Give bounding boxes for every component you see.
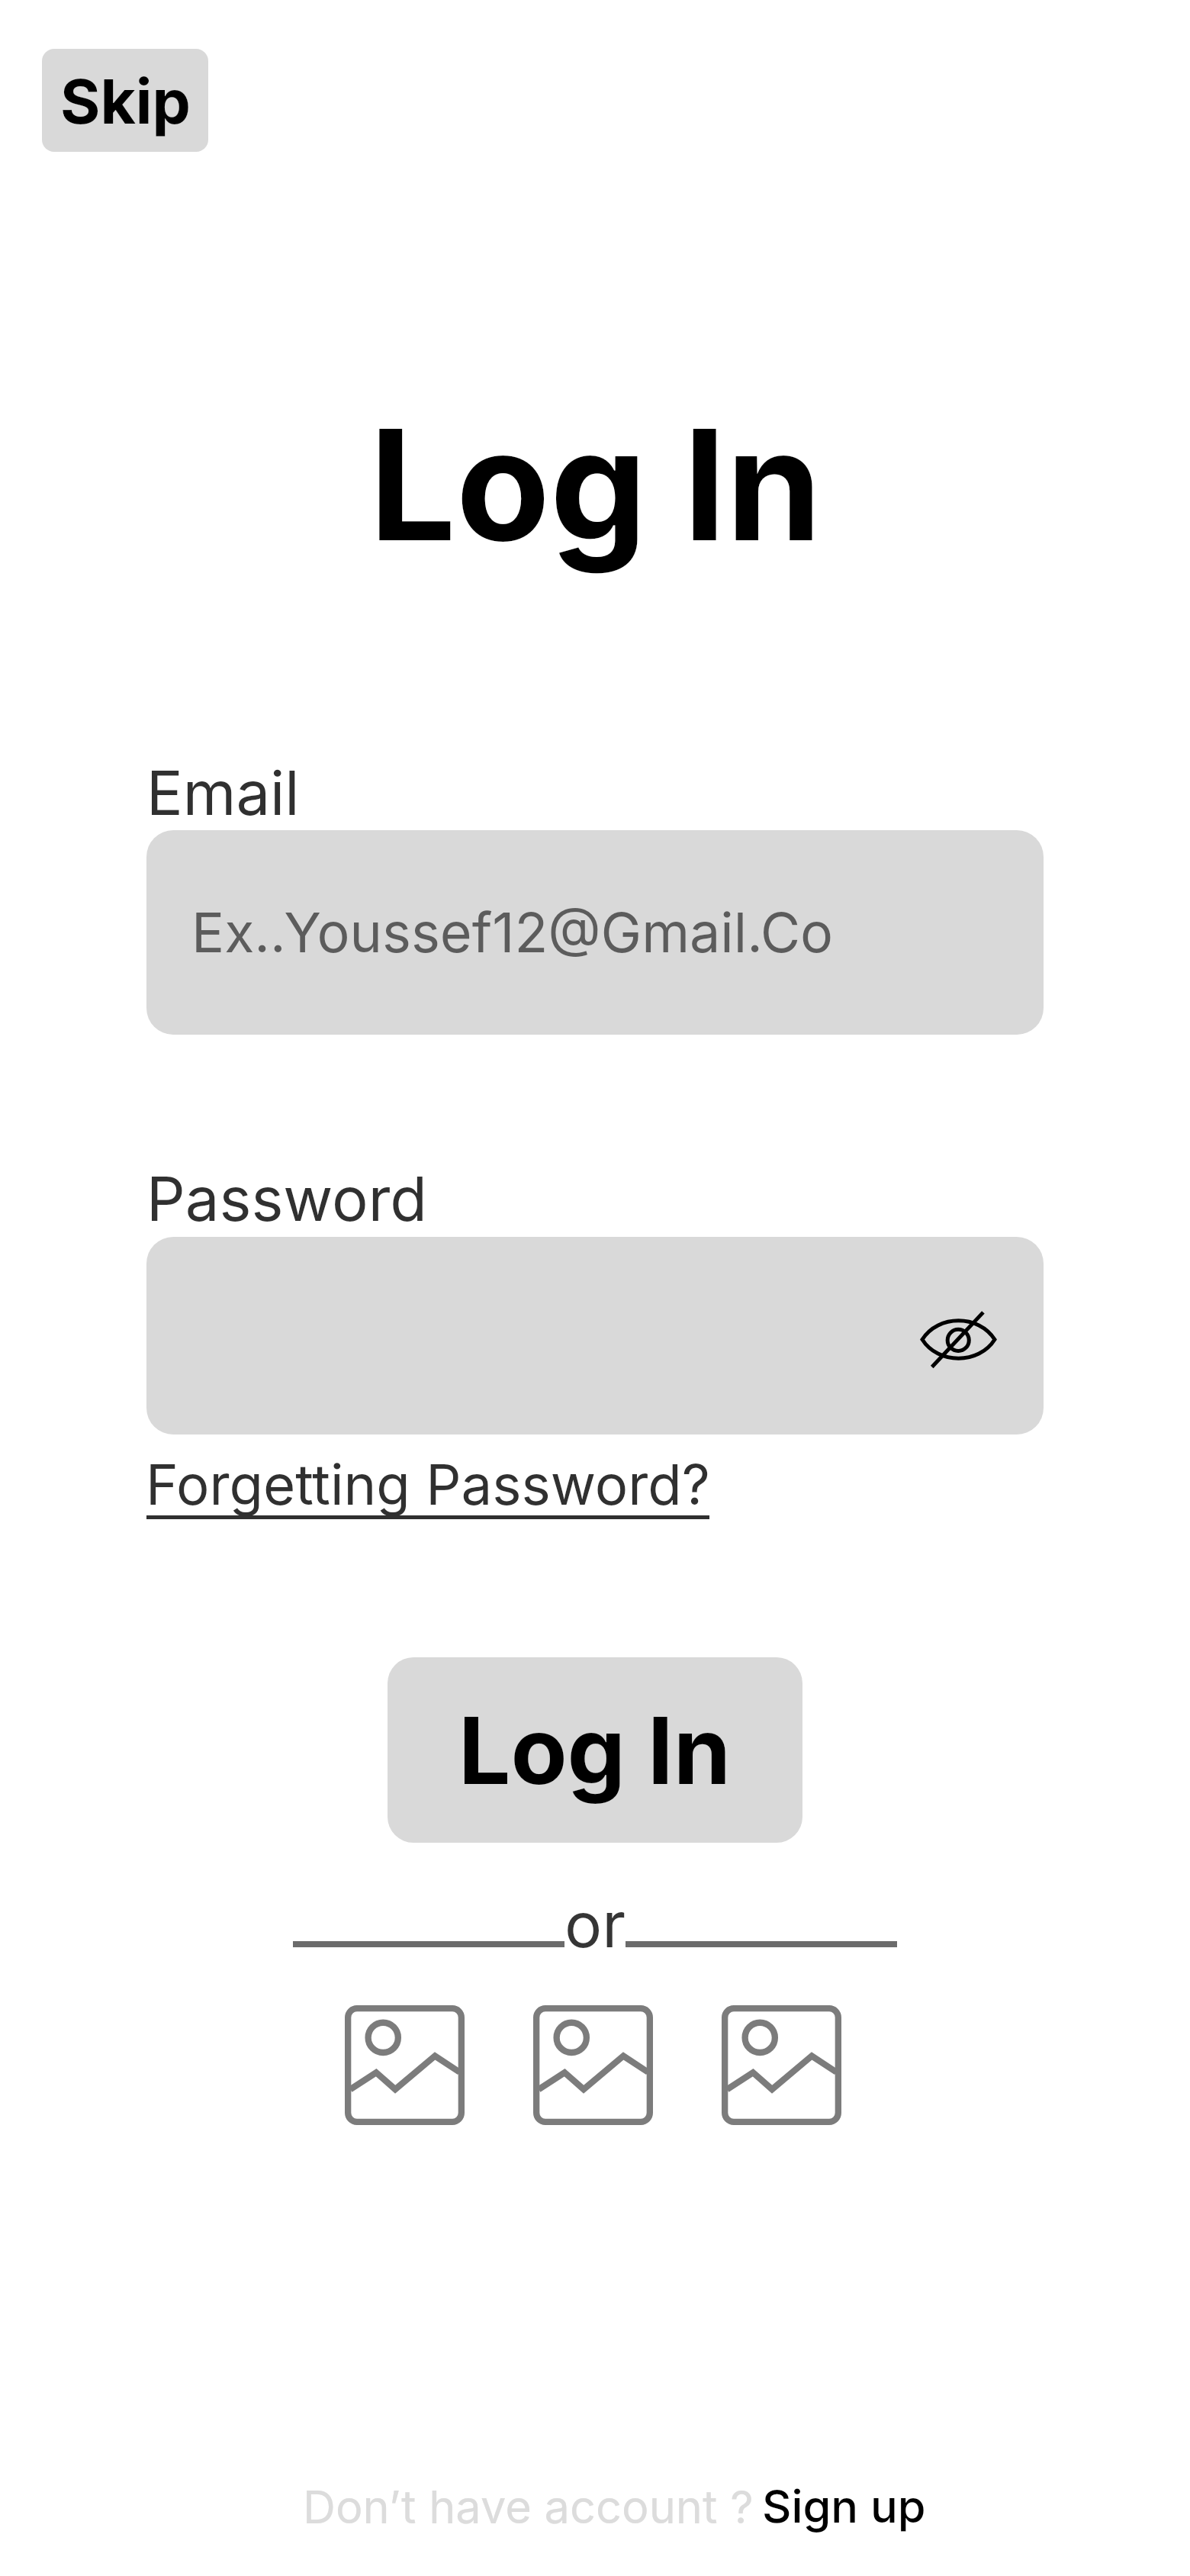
- button[interactable]: Show password: [146, 1237, 1044, 1435]
- staticText: Sign up: [762, 2478, 926, 2533]
- staticText: Don’t have account ?: [303, 2479, 754, 2534]
- button[interactable]: Sign in option 2: [533, 2005, 653, 2125]
- staticText: or: [564, 1887, 626, 1963]
- button[interactable]: Skip: [42, 49, 208, 152]
- staticText: Skip: [60, 64, 191, 138]
- staticText: Log In: [458, 1695, 732, 1806]
- button[interactable]: Ex..Youssef12@Gmail.Co: [146, 830, 1044, 1035]
- button[interactable]: Log In: [388, 1657, 802, 1843]
- staticText: Email: [146, 756, 300, 829]
- staticText: Password: [146, 1162, 427, 1235]
- button[interactable]: Show password: [912, 1293, 1004, 1385]
- staticText: Ex..Youssef12@Gmail.Co: [191, 899, 834, 965]
- button[interactable]: Sign up: [762, 2478, 926, 2533]
- button[interactable]: Sign in option 3: [722, 2005, 841, 2125]
- staticText: Forgetting Password?: [146, 1451, 710, 1518]
- staticText: Log In: [369, 391, 822, 577]
- button[interactable]: Sign in option 1: [345, 2005, 465, 2125]
- button[interactable]: Forgetting Password?: [146, 1451, 709, 1519]
